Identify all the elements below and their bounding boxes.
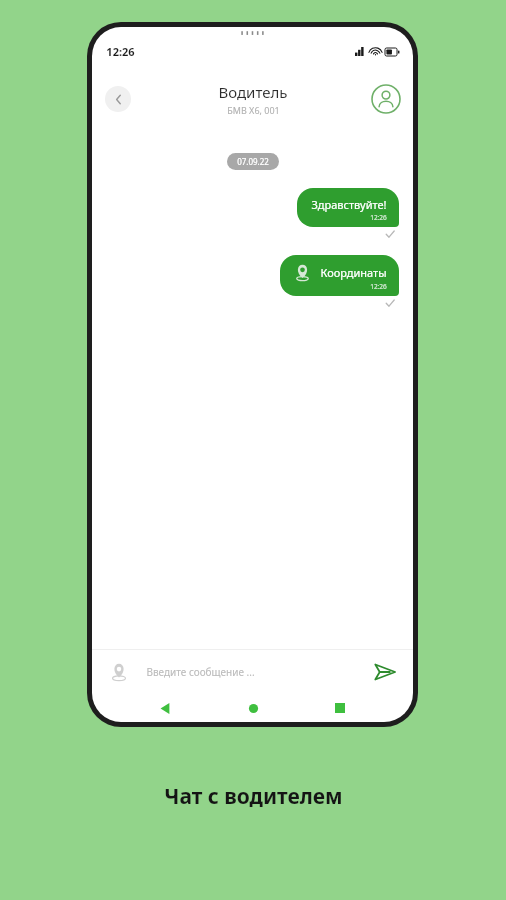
button[interactable]: Send <box>369 656 401 688</box>
staticText: 12:26 <box>370 213 387 222</box>
button[interactable]: Attach location <box>104 657 134 687</box>
button[interactable]: Profile <box>371 84 401 114</box>
staticText: БМВ Х6, 001 <box>227 104 280 116</box>
staticText: Здравствуйте! <box>311 197 387 212</box>
staticText: 07.09.22 <box>237 156 269 167</box>
button[interactable]: Введите сообщение ... <box>146 652 369 692</box>
staticText: 12:26 <box>106 44 135 59</box>
button[interactable]: Здравствуйте! <box>297 188 399 227</box>
staticText: Введите сообщение ... <box>146 665 255 679</box>
staticText: 12:26 <box>370 282 387 291</box>
staticText: Чат с водителем <box>164 782 343 811</box>
button[interactable]: Back <box>105 86 131 112</box>
button[interactable]: Home <box>238 694 268 722</box>
staticText: Водитель <box>218 82 288 102</box>
button[interactable]: Координаты <box>280 255 399 296</box>
staticText: Координаты <box>320 265 387 280</box>
button[interactable]: Recents <box>325 694 355 722</box>
button[interactable]: Back <box>150 694 180 722</box>
